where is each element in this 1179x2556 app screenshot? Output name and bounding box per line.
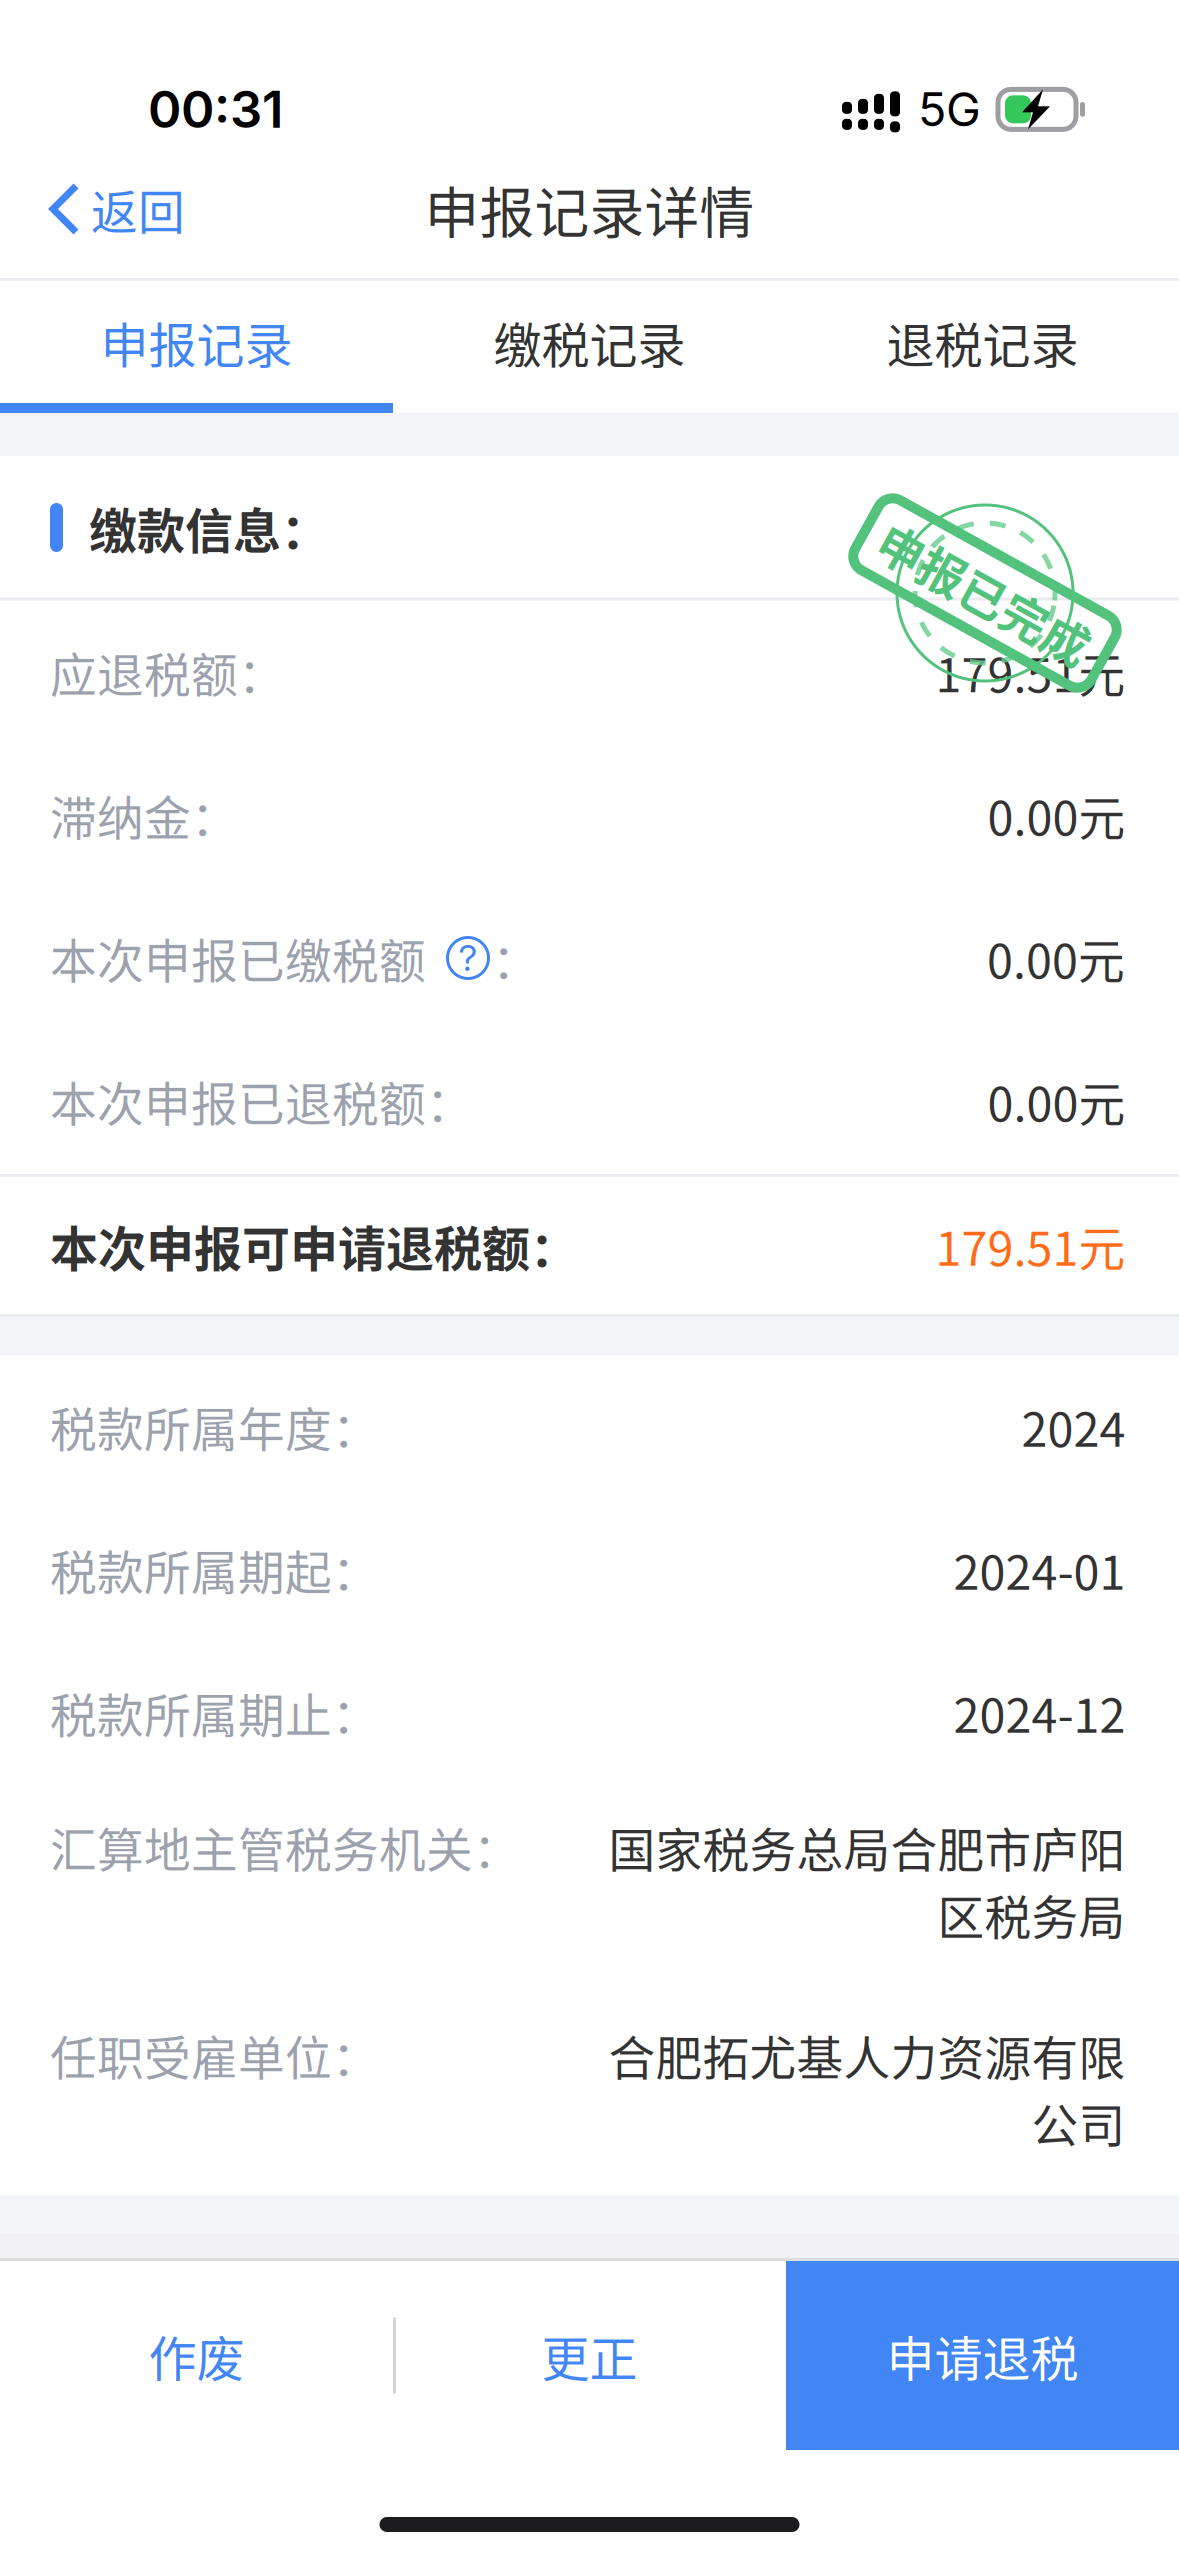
staticText: 0.00元: [987, 924, 1125, 992]
staticText: 2024-12: [953, 1679, 1125, 1746]
staticText: 缴税记录: [493, 307, 685, 377]
staticText: 179.51元: [935, 1212, 1125, 1279]
button[interactable]: 退税记录: [786, 281, 1179, 403]
staticText: ?: [458, 936, 477, 980]
staticText: 更正: [541, 2321, 637, 2390]
staticText: 缴款信息：: [89, 493, 329, 562]
button[interactable]: 返回: [0, 140, 211, 278]
staticText: 2024: [1021, 1393, 1125, 1460]
staticText: 本次申报已退税额：: [50, 1067, 473, 1135]
button[interactable]: 申报记录: [0, 281, 393, 403]
staticText: 申报记录详情: [424, 169, 754, 249]
staticText: 滞纳金：: [50, 781, 238, 849]
staticText: 5G: [918, 81, 981, 138]
staticText: 返回: [91, 175, 185, 243]
staticText: 本次申报已缴税额: [50, 924, 426, 992]
staticText: 0.00元: [987, 781, 1125, 849]
staticText: 00:31: [148, 79, 283, 140]
button[interactable]: 作废: [0, 2261, 393, 2450]
staticText: 申报记录: [100, 307, 292, 377]
staticText: 应退税额：: [50, 638, 285, 706]
button[interactable]: 申请退税: [786, 2261, 1179, 2450]
button[interactable]: 缴税记录: [393, 281, 786, 403]
staticText: 本次申报可申请退税额：: [50, 1211, 578, 1280]
staticText: 国家税务总局合肥市庐阳区税务局: [608, 1813, 1125, 1948]
staticText: 0.00元: [987, 1067, 1125, 1135]
staticText: 申请退税: [886, 2321, 1078, 2390]
staticText: 税款所属年度：: [50, 1393, 379, 1460]
staticText: 179.51元: [935, 638, 1125, 706]
staticText: 作废: [148, 2321, 244, 2390]
staticText: 税款所属期起：: [50, 1536, 379, 1603]
button[interactable]: 更正: [393, 2261, 786, 2450]
staticText: 申报已完成: [867, 559, 1102, 627]
staticText: 汇算地主管税务机关：: [50, 1813, 520, 1881]
staticText: 税款所属期止：: [50, 1679, 379, 1746]
staticText: 退税记录: [886, 307, 1078, 377]
staticText: ：: [492, 924, 539, 992]
staticText: 2024-01: [953, 1536, 1125, 1603]
staticText: 任职受雇单位：: [50, 2021, 379, 2089]
staticText: 合肥拓尤基人力资源有限公司: [608, 2021, 1125, 2156]
